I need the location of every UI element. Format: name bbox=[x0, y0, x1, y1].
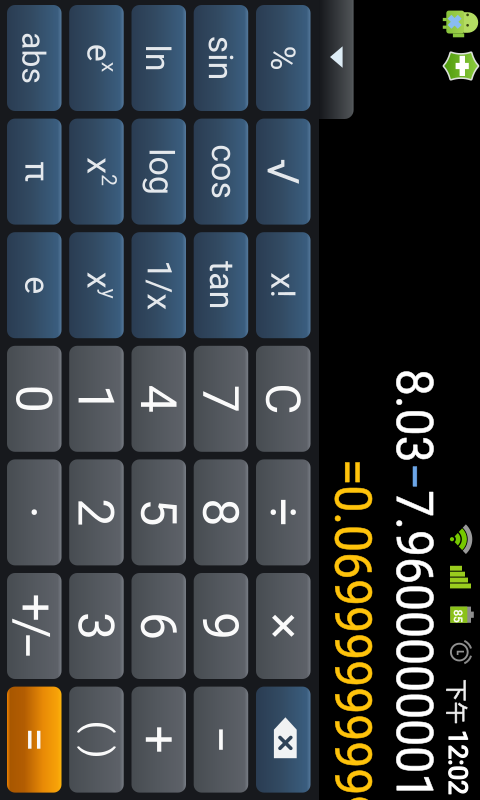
button[interactable] bbox=[194, 119, 248, 225]
button[interactable] bbox=[7, 5, 61, 111]
button[interactable] bbox=[7, 232, 61, 338]
button[interactable] bbox=[131, 346, 186, 452]
button[interactable]: Backspace bbox=[256, 687, 310, 793]
button[interactable] bbox=[256, 232, 310, 338]
button[interactable] bbox=[256, 346, 310, 452]
button[interactable] bbox=[131, 573, 186, 679]
button[interactable]: Hide keypad bbox=[319, 0, 354, 119]
button[interactable] bbox=[69, 573, 124, 679]
button[interactable] bbox=[256, 459, 310, 565]
button[interactable] bbox=[69, 5, 124, 111]
button[interactable] bbox=[194, 687, 248, 793]
button[interactable] bbox=[69, 459, 124, 565]
button[interactable] bbox=[256, 5, 310, 111]
button[interactable] bbox=[69, 119, 124, 225]
button[interactable] bbox=[194, 459, 248, 565]
button[interactable] bbox=[131, 232, 186, 338]
button[interactable] bbox=[69, 687, 124, 793]
button[interactable] bbox=[194, 346, 248, 452]
button[interactable] bbox=[7, 119, 61, 225]
button[interactable] bbox=[131, 119, 186, 225]
button[interactable] bbox=[69, 346, 124, 452]
button[interactable] bbox=[256, 573, 310, 679]
button[interactable]: Plus minus bbox=[7, 573, 61, 679]
button[interactable] bbox=[256, 119, 310, 225]
button[interactable] bbox=[194, 232, 248, 338]
button[interactable] bbox=[131, 5, 186, 111]
button[interactable] bbox=[7, 346, 61, 452]
button[interactable] bbox=[194, 573, 248, 679]
button[interactable] bbox=[131, 687, 186, 793]
button[interactable] bbox=[194, 5, 248, 111]
button[interactable] bbox=[7, 459, 61, 565]
button[interactable] bbox=[131, 459, 186, 565]
button[interactable] bbox=[7, 687, 61, 793]
button[interactable] bbox=[69, 232, 124, 338]
